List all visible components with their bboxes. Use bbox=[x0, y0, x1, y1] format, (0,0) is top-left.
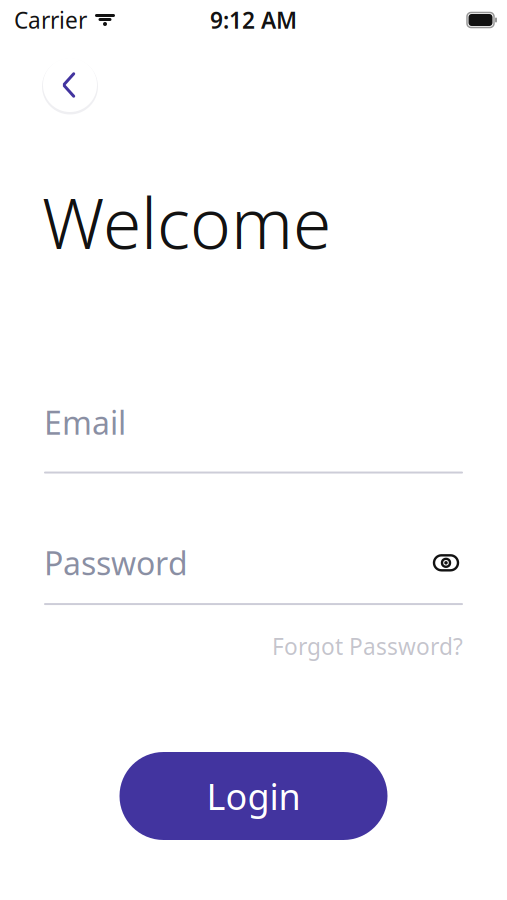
staticText: Password bbox=[44, 542, 188, 584]
button[interactable]: Forgot Password? bbox=[272, 631, 463, 661]
staticText: Email bbox=[44, 401, 126, 444]
button[interactable]: Show password bbox=[429, 546, 463, 580]
staticText: 9:12 AM bbox=[210, 5, 297, 35]
staticText: Carrier bbox=[14, 5, 87, 35]
button[interactable]: Back bbox=[41, 56, 99, 114]
button[interactable]: Login bbox=[119, 752, 387, 840]
staticText: Forgot Password? bbox=[272, 631, 463, 661]
staticText: Welcome bbox=[42, 176, 331, 268]
staticText: Login bbox=[206, 772, 300, 820]
